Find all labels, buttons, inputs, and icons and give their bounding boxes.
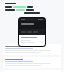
button[interactable] [3, 44, 61, 55]
button[interactable] [3, 57, 61, 68]
button[interactable]: Filter [27, 31, 32, 33]
button[interactable]: Filter [33, 31, 38, 33]
button[interactable]: Filter [21, 31, 26, 33]
button[interactable]: Phone preview [18, 17, 46, 47]
